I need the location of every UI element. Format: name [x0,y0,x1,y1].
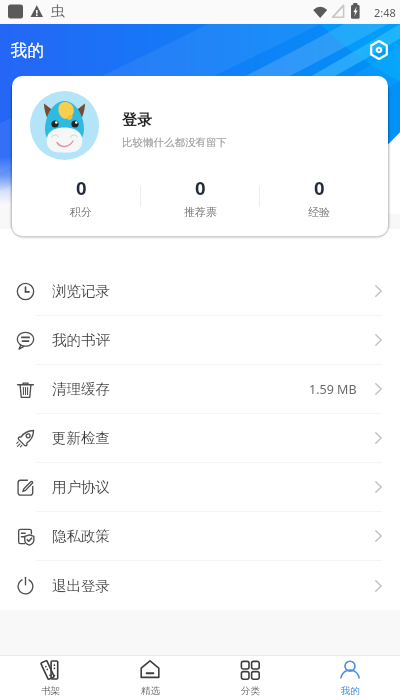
button[interactable]: 0 [141,175,259,217]
button[interactable]: 0 [22,175,140,217]
button[interactable]: 清理缓存 [0,365,400,414]
staticText: 登录 [122,111,152,130]
staticText: 退出登录 [52,577,110,595]
staticText: 经验 [308,205,330,217]
button[interactable]: 用户协议 [0,463,400,512]
staticText: 2:48 [374,5,396,20]
button[interactable]: 退出登录 [0,561,400,610]
staticText: 推荐票 [184,205,217,217]
staticText: 清理缓存 [52,380,110,398]
button[interactable]: 我的 [300,656,400,700]
staticText: 更新检查 [52,429,110,447]
staticText: 0 [314,175,325,200]
button[interactable]: 书架 [0,656,100,700]
staticText: 精选 [141,685,160,697]
staticText: 0 [76,175,87,200]
staticText: 比较懒什么都没有留下 [122,136,227,149]
button[interactable]: 精选 [100,656,200,700]
staticText: 我的 [341,685,360,697]
staticText: 浏览记录 [52,282,110,300]
button[interactable]: 0 [260,175,378,217]
staticText: 虫 [51,3,65,21]
staticText: 0 [195,175,206,200]
staticText: 积分 [70,205,92,217]
button[interactable]: Settings [364,35,394,65]
staticText: 我的 [11,40,44,61]
button[interactable]: 分类 [200,656,300,700]
button[interactable]: 隐私政策 [0,512,400,561]
staticText: 1.59 MB [309,381,357,398]
staticText: 书架 [41,685,60,697]
button[interactable]: 更新检查 [0,414,400,463]
staticText: 我的书评 [52,331,110,349]
staticText: 分类 [241,685,260,697]
button[interactable]: 我的书评 [0,316,400,365]
button[interactable]: 浏览记录 [0,267,400,316]
staticText: 用户协议 [52,478,110,496]
staticText: 隐私政策 [52,527,110,545]
